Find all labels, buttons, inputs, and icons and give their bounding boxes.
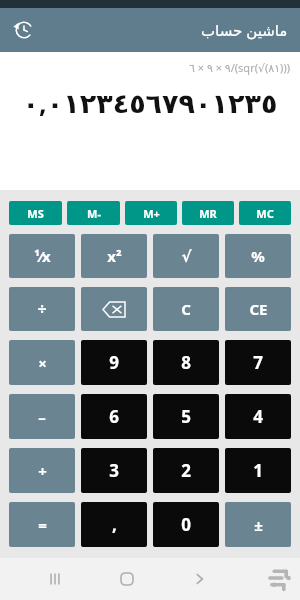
- staticText: 3: [109, 459, 119, 482]
- staticText: %: [251, 246, 265, 266]
- button[interactable]: =: [9, 502, 75, 547]
- staticText: 6: [109, 405, 119, 428]
- staticText: =: [38, 515, 47, 535]
- button[interactable]: ,: [81, 502, 147, 547]
- button[interactable]: MS: [9, 201, 62, 225]
- staticText: 8: [181, 351, 191, 374]
- staticText: 9: [109, 351, 119, 374]
- staticText: 1: [253, 459, 263, 482]
- button[interactable]: MR: [182, 201, 234, 225]
- staticText: CE: [249, 299, 268, 319]
- button[interactable]: ¹⁄x: [9, 234, 75, 278]
- button[interactable]: CE: [225, 287, 291, 331]
- staticText: 0: [181, 513, 191, 536]
- button[interactable]: 5: [153, 394, 219, 439]
- staticText: MS: [27, 206, 44, 221]
- staticText: ±: [254, 515, 263, 535]
- staticText: 2: [181, 459, 191, 482]
- button[interactable]: 8: [153, 340, 219, 385]
- button[interactable]: ×: [9, 340, 75, 385]
- button[interactable]: Back: [182, 562, 216, 596]
- button[interactable]: Home: [110, 562, 144, 596]
- button[interactable]: Backspace: [81, 287, 147, 331]
- button[interactable]: 9: [81, 340, 147, 385]
- button[interactable]: ÷: [9, 287, 75, 331]
- staticText: 4: [253, 405, 263, 428]
- button[interactable]: 4: [225, 394, 291, 439]
- button[interactable]: +: [9, 448, 75, 493]
- staticText: +: [38, 461, 47, 481]
- button[interactable]: √: [153, 234, 219, 278]
- button[interactable]: 6: [81, 394, 147, 439]
- button[interactable]: Recents: [38, 562, 72, 596]
- staticText: ٠,٠١٢٣٤٥٦٧٩٠١٢٣٥: [10, 84, 290, 121]
- button[interactable]: M-: [67, 201, 120, 225]
- staticText: ٩ × ٩ × ٦/(sqr(√(٨١))): [10, 60, 290, 75]
- button[interactable]: ±: [225, 502, 291, 547]
- button[interactable]: 7: [225, 340, 291, 385]
- button[interactable]: C: [153, 287, 219, 331]
- staticText: ÷: [37, 298, 47, 320]
- staticText: ماشین حساب: [201, 20, 288, 40]
- button[interactable]: –: [9, 394, 75, 439]
- button[interactable]: 1: [225, 448, 291, 493]
- button[interactable]: 0: [153, 502, 219, 547]
- button[interactable]: History: [8, 14, 40, 46]
- staticText: 5: [181, 405, 191, 428]
- button[interactable]: 2: [153, 448, 219, 493]
- staticText: MC: [256, 206, 274, 221]
- staticText: ×: [38, 353, 47, 373]
- staticText: ¹⁄x: [34, 246, 51, 266]
- staticText: 7: [253, 351, 263, 374]
- staticText: MR: [199, 206, 217, 221]
- button[interactable]: 3: [81, 448, 147, 493]
- staticText: x²: [107, 246, 122, 266]
- button[interactable]: M+: [125, 201, 177, 225]
- staticText: √: [181, 248, 192, 265]
- button[interactable]: MC: [239, 201, 291, 225]
- staticText: M+: [143, 206, 160, 221]
- staticText: M-: [87, 206, 101, 221]
- staticText: C: [181, 299, 191, 319]
- button[interactable]: %: [225, 234, 291, 278]
- staticText: –: [38, 407, 46, 427]
- staticText: ,: [112, 513, 117, 536]
- button[interactable]: x²: [81, 234, 147, 278]
